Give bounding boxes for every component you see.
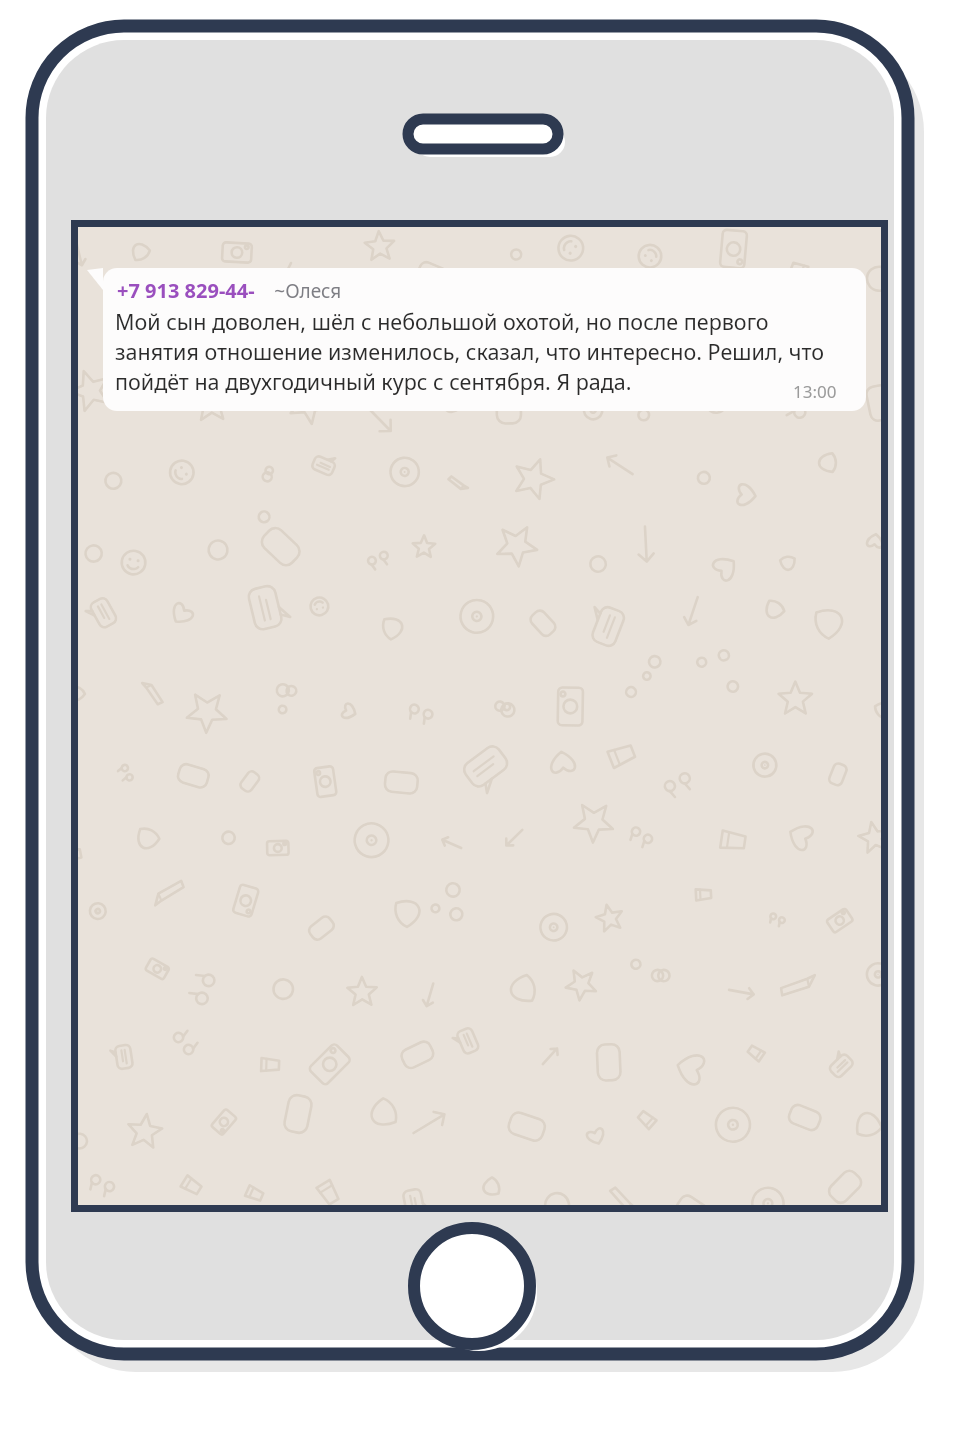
staticText: +7 913 829-44- ~Олеся: [117, 277, 342, 304]
staticText: 13:00: [793, 380, 837, 403]
staticText: Мой сын доволен, шёл с небольшой охотой,…: [115, 307, 855, 396]
button[interactable]: Message from +7 913 829-44 ~Олеся: [103, 268, 866, 411]
